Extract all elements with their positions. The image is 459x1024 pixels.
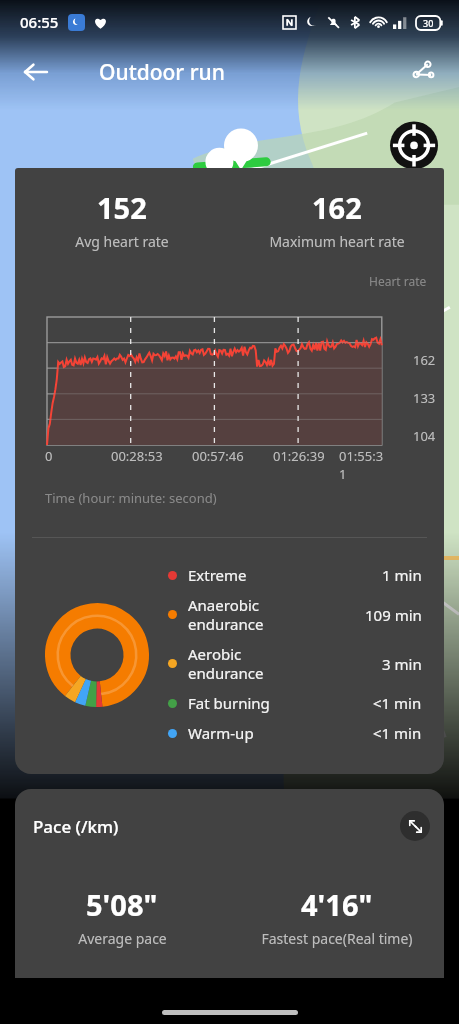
- staticText: 00:28:53: [111, 447, 163, 465]
- staticText: Extreme: [188, 565, 382, 585]
- staticText: Outdoor run: [99, 58, 225, 87]
- staticText: 01:55:31: [339, 447, 389, 483]
- staticText: Pace (/km): [33, 815, 119, 838]
- staticText: Aerobic endurance: [188, 644, 382, 683]
- staticText: Avg heart rate: [75, 232, 169, 251]
- staticText: 4'16": [301, 885, 373, 924]
- staticText: Average pace: [78, 929, 167, 948]
- staticText: 0: [45, 447, 53, 465]
- staticText: 162: [312, 188, 362, 227]
- staticText: 00:57:46: [192, 447, 244, 465]
- staticText: 104: [413, 427, 436, 445]
- staticText: 152: [97, 188, 147, 227]
- staticText: Maximum heart rate: [269, 232, 405, 251]
- button[interactable]: 152: [15, 168, 444, 774]
- staticText: 109 min: [365, 605, 422, 625]
- button[interactable]: Share: [399, 48, 447, 96]
- staticText: 1 min: [382, 565, 422, 585]
- staticText: Fastest pace(Real time): [261, 929, 413, 948]
- staticText: Anaerobic endurance: [188, 595, 365, 634]
- staticText: 5'08": [86, 885, 158, 924]
- button[interactable]: Back: [12, 48, 60, 96]
- staticText: 162: [413, 351, 436, 369]
- staticText: Time (hour: minute: second): [45, 489, 217, 507]
- staticText: <1 min: [373, 693, 422, 713]
- button[interactable]: Expand: [400, 811, 430, 841]
- staticText: Fat burning: [188, 693, 373, 713]
- staticText: 01:26:39: [273, 447, 325, 465]
- staticText: 133: [413, 389, 436, 407]
- staticText: 30: [423, 17, 434, 29]
- staticText: <1 min: [373, 723, 422, 743]
- staticText: 06:55: [20, 12, 59, 32]
- staticText: Heart rate: [369, 273, 427, 289]
- staticText: Warm-up: [188, 723, 373, 743]
- button[interactable]: Pace (/km): [15, 789, 444, 978]
- staticText: 3 min: [382, 654, 422, 674]
